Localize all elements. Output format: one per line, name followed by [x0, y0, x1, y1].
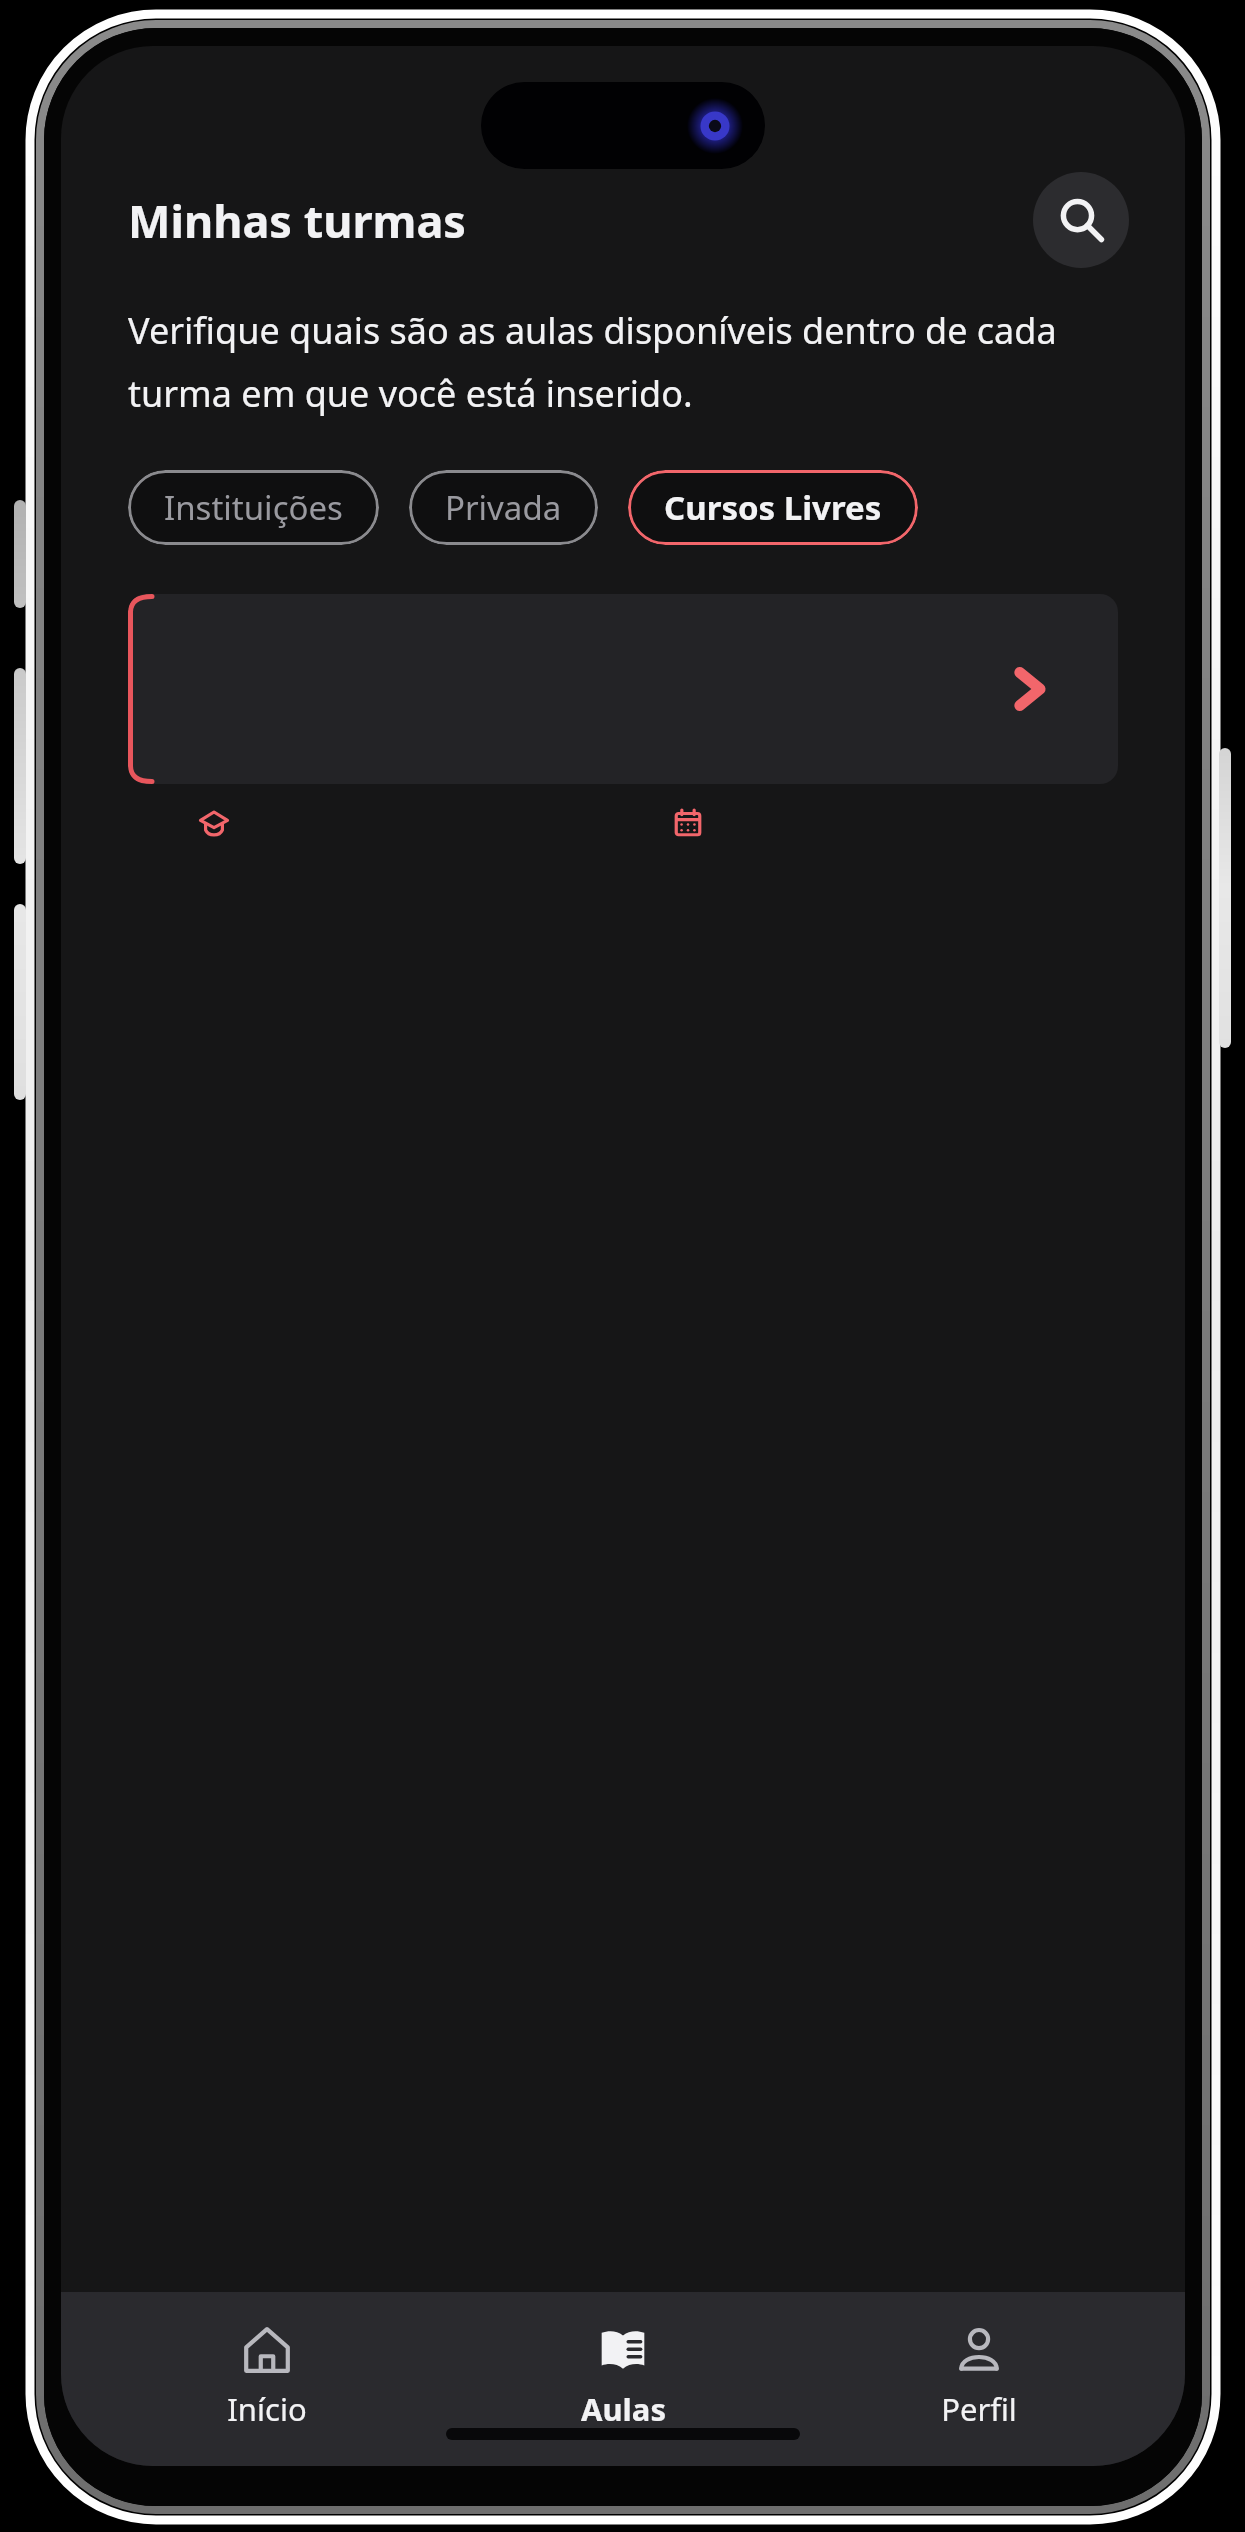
button[interactable]: Início — [117, 2324, 417, 2430]
staticText: Início — [227, 2388, 307, 2430]
staticText: Verifique quais são as aulas disponíveis… — [128, 306, 1129, 418]
button[interactable]: Aulas — [473, 2324, 773, 2430]
button[interactable]: Privada — [409, 470, 598, 545]
button[interactable]: Perfil — [829, 2324, 1129, 2430]
button[interactable]: Buscar — [1033, 172, 1129, 268]
staticText: Instituições — [164, 485, 343, 530]
staticText: Privada — [445, 485, 562, 530]
staticText: Perfil — [941, 2388, 1017, 2430]
staticText: Cursos Livres — [664, 485, 882, 530]
staticText: Minhas turmas — [128, 190, 466, 251]
button[interactable] — [128, 594, 1118, 784]
button[interactable]: Instituições — [128, 470, 379, 545]
staticText: Aulas — [581, 2388, 666, 2430]
button[interactable]: Cursos Livres — [628, 470, 918, 545]
